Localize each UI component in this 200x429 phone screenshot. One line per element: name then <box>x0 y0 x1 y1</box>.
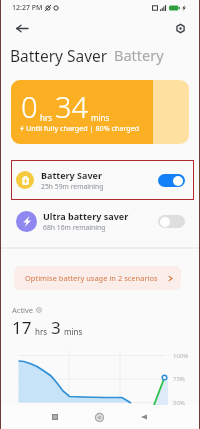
button[interactable]: Battery Saver <box>11 160 194 200</box>
staticText: hrs <box>40 112 53 123</box>
staticText: 25h 59m remaining <box>41 182 104 191</box>
staticText: Active <box>12 305 34 315</box>
staticText: Ultra battery saver <box>43 210 129 222</box>
staticText: 68h 16m remaining <box>43 223 106 232</box>
staticText: 50% <box>173 399 185 407</box>
staticText: Battery Saver <box>10 45 108 66</box>
button[interactable]: Ultra battery saver <box>11 202 194 240</box>
staticText: Optimise battery usage in 2 scenarios <box>25 273 158 283</box>
staticText: 75% <box>173 375 185 383</box>
button[interactable]: 0 <box>11 80 189 144</box>
staticText: 12:27 PM <box>12 3 43 13</box>
staticText: Until fully charged | 80% charged <box>26 123 140 133</box>
button[interactable]: Battery Saver on <box>158 174 185 187</box>
staticText: Battery <box>114 45 164 65</box>
button[interactable]: Battery Saver <box>10 45 108 66</box>
button[interactable]: Ultra battery saver off <box>158 215 185 228</box>
staticText: Battery Saver <box>41 169 102 181</box>
button[interactable]: Settings <box>171 19 190 38</box>
button[interactable]: Back <box>12 19 31 38</box>
button[interactable]: Back <box>134 407 154 427</box>
staticText: 100% <box>173 352 189 360</box>
staticText: 0 <box>21 87 38 126</box>
button[interactable]: Home <box>89 407 109 427</box>
button[interactable]: Optimise battery usage in 2 scenarios <box>14 266 181 290</box>
staticText: 17 <box>12 316 32 339</box>
staticText: mins <box>64 326 83 337</box>
staticText: mins <box>91 112 110 123</box>
staticText: hrs <box>35 326 48 337</box>
button[interactable]: Recents <box>45 407 65 427</box>
staticText: 3 <box>51 316 61 339</box>
button[interactable]: Battery <box>114 45 164 66</box>
staticText: 34 <box>55 87 89 126</box>
